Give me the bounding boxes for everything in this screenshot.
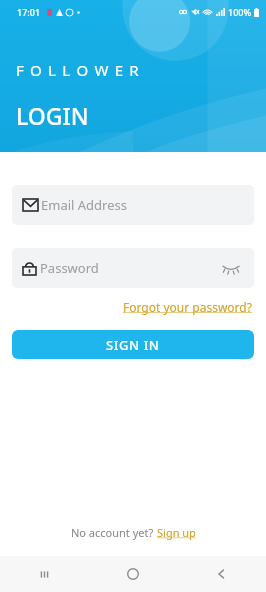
staticText: SIGN IN	[106, 336, 160, 354]
button[interactable]: Sign up	[157, 525, 196, 540]
staticText: Forgot your password?	[123, 299, 252, 315]
button[interactable]: Forgot your password?	[121, 297, 254, 317]
staticText: Password	[40, 259, 99, 277]
button[interactable]: Show password	[221, 258, 241, 278]
staticText: Email Address	[41, 196, 127, 214]
staticText: LOGIN	[16, 100, 89, 131]
staticText: 100%	[228, 6, 252, 18]
staticText: No account yet?	[71, 525, 157, 540]
button[interactable]: Password	[12, 248, 254, 288]
button[interactable]: Recents	[0, 556, 88, 592]
staticText: F O L L O W E R	[16, 60, 140, 80]
button[interactable]: Back	[177, 556, 266, 592]
staticText: Sign up	[157, 525, 196, 540]
button[interactable]: SIGN IN	[12, 330, 254, 359]
button[interactable]: Email Address	[12, 185, 254, 225]
staticText: 17:01	[17, 6, 41, 18]
button[interactable]: Home	[88, 556, 177, 592]
